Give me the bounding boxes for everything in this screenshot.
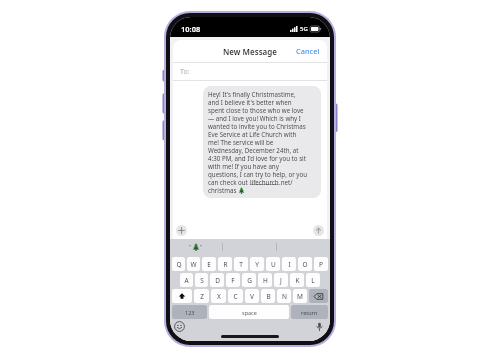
staticText: questions, I can try to help, or you [208,170,308,178]
button[interactable]: D [210,273,224,287]
staticText: 4:30 PM, and I'd love for you to sit [208,154,306,162]
button[interactable]: G [242,273,256,287]
button[interactable]: B [261,289,275,303]
staticText: H [263,276,268,285]
button[interactable]: U [266,257,280,271]
staticText: B [266,292,271,301]
button[interactable]: M [293,289,307,303]
staticText: 123 [185,309,195,316]
button[interactable]: O [298,257,312,271]
button[interactable]: S [195,273,208,287]
staticText: W [190,260,197,269]
button[interactable]: R [218,257,232,271]
button[interactable]: 123 [172,305,207,319]
button[interactable]: Shift [172,289,192,303]
button[interactable]: " [170,239,222,255]
staticText: can check out [208,178,250,186]
button[interactable]: Dictate [314,321,325,332]
staticText: Cancel [296,46,320,56]
staticText: J [280,276,282,285]
button[interactable]: J [274,273,288,287]
staticText: O [302,260,308,269]
staticText: U [271,260,276,269]
staticText: E [207,260,211,269]
button[interactable]: Backspace [309,289,328,303]
staticText: To: [180,67,190,77]
staticText: " [200,243,203,251]
staticText: and I believe it's better when [208,98,292,106]
staticText: lifechurch [250,178,279,186]
button[interactable]: E [202,257,216,271]
staticText: G [247,276,252,285]
button[interactable]: To: [173,63,327,80]
button[interactable]: F [226,273,240,287]
button[interactable]: N [277,289,291,303]
staticText: spent close to those who we love [208,106,304,114]
button[interactable]: Hey! It's finally Christmastime, [203,86,321,198]
staticText: with me! If you have any [208,162,279,170]
staticText: D [215,276,220,285]
staticText: space [242,309,257,316]
staticText: Eve Service at Life Church with [208,130,297,138]
staticText: christmas [208,186,238,194]
staticText: S [200,276,204,285]
button[interactable]: Send [313,225,324,236]
button[interactable]: space [209,305,289,319]
button[interactable]: Cancel [289,42,327,60]
staticText: — and I love you! Which is why I [208,114,301,122]
staticText: L [311,276,315,285]
staticText: Wednesday, December 24th, at [208,146,299,154]
button[interactable]: Emoji [174,321,185,332]
staticText: F [231,276,235,285]
button[interactable]: W [187,257,200,271]
button[interactable]: K [290,273,304,287]
button[interactable]: V [245,289,259,303]
button[interactable]: H [258,273,272,287]
button[interactable]: P [314,257,328,271]
button[interactable]: I [282,257,296,271]
staticText: me! The service will be [208,138,274,146]
button[interactable]: A [180,273,193,287]
staticText: M [297,292,303,301]
staticText: 5G [300,25,308,33]
staticText: wanted to invite you to Christmas [208,122,306,130]
staticText: I [288,260,291,269]
button[interactable]: Y [250,257,264,271]
staticText: " [189,243,192,251]
button[interactable]: Z [194,289,209,303]
button[interactable]: L [306,273,320,287]
staticText: 10:08 [181,24,201,34]
staticText: N [282,292,287,301]
staticText: X [217,292,221,301]
staticText: P [319,260,323,269]
button[interactable]: Q [172,257,185,271]
staticText: T [239,260,243,269]
staticText: Q [176,260,182,269]
staticText: K [295,276,300,285]
staticText: return [301,309,318,316]
button[interactable]: Add attachment [176,225,187,236]
button[interactable]: X [211,289,226,303]
staticText: Y [255,260,259,269]
button[interactable]: return [291,305,328,319]
staticText: Z [200,292,204,301]
staticText: New Message [223,46,277,57]
staticText: .net/ [279,178,293,186]
staticText: V [250,292,254,301]
button[interactable]: T [234,257,248,271]
button[interactable]: C [228,289,243,303]
staticText: R [223,260,228,269]
staticText: A [184,276,189,285]
staticText: C [233,292,238,301]
staticText: Hey! It's finally Christmastime, [208,90,296,98]
